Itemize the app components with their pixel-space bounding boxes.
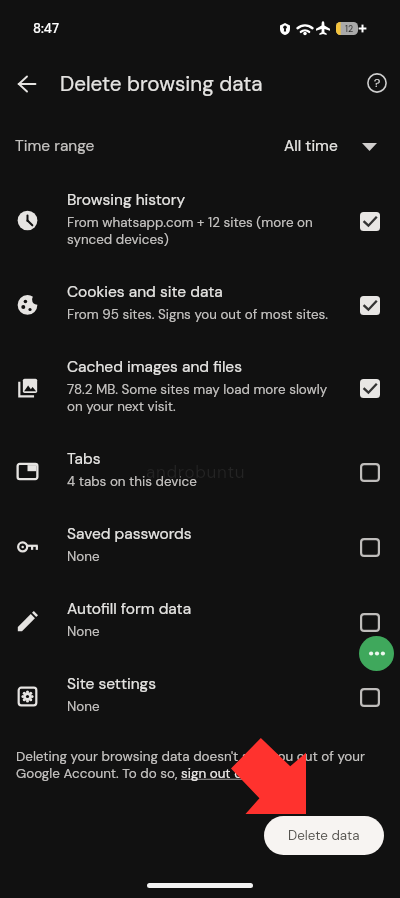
button[interactable]: Time range bbox=[0, 119, 400, 175]
button[interactable]: Cached images and files bbox=[0, 346, 400, 438]
staticText: Tabs bbox=[67, 449, 337, 469]
staticText: 8:47 bbox=[33, 20, 59, 37]
staticText: None bbox=[67, 623, 339, 640]
staticText: Autofill form data bbox=[67, 599, 337, 619]
button[interactable]: More options bbox=[359, 636, 394, 671]
staticText: Site settings bbox=[67, 674, 337, 694]
staticText: All time bbox=[284, 136, 338, 156]
staticText: 4 tabs on this device bbox=[67, 473, 339, 490]
button[interactable]: Tabs bbox=[0, 438, 400, 513]
button[interactable]: Delete data bbox=[264, 816, 384, 855]
button[interactable]: Help bbox=[362, 68, 392, 98]
button[interactable]: Back bbox=[12, 69, 42, 99]
button[interactable]: Saved passwords bbox=[0, 513, 400, 588]
staticText: 78.2 MB. Some sites may load more slowly… bbox=[67, 381, 339, 415]
staticText: Deleting your browsing data doesn't sign… bbox=[16, 748, 372, 782]
staticText: From 95 sites. Signs you out of most sit… bbox=[67, 306, 339, 323]
staticText: None bbox=[67, 698, 339, 715]
button[interactable]: Site settings bbox=[0, 663, 400, 738]
staticText: From whatsapp.com + 12 sites (more on sy… bbox=[67, 214, 339, 248]
staticText: 12 bbox=[345, 23, 354, 35]
staticText: Delete data bbox=[288, 827, 360, 844]
button[interactable]: Browsing history bbox=[0, 179, 400, 271]
staticText: Delete browsing data bbox=[60, 70, 263, 97]
staticText: ? bbox=[374, 75, 381, 91]
button[interactable]: Autofill form data bbox=[0, 588, 400, 663]
staticText: Saved passwords bbox=[67, 524, 337, 544]
staticText: None bbox=[67, 548, 339, 565]
staticText: Cookies and site data bbox=[67, 282, 337, 302]
staticText: Cached images and files bbox=[67, 357, 337, 377]
staticText: androbuntu bbox=[146, 461, 246, 483]
button[interactable]: Cookies and site data bbox=[0, 271, 400, 346]
staticText: Time range bbox=[15, 136, 95, 156]
staticText: Browsing history bbox=[67, 190, 337, 210]
